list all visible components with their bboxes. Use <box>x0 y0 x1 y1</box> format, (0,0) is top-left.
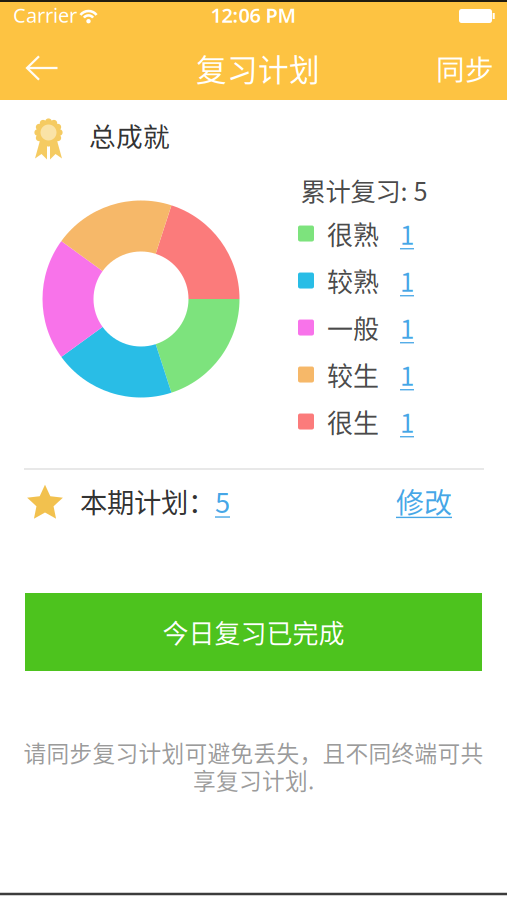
button[interactable]: 1 <box>400 356 414 393</box>
staticText: 一般 <box>327 309 379 346</box>
button[interactable]: 今日复习已完成 <box>25 593 482 671</box>
button[interactable]: 5 <box>215 481 230 521</box>
staticText: 1 <box>400 215 414 252</box>
staticText: 较生 <box>327 356 379 393</box>
staticText: 很熟 <box>327 215 379 252</box>
staticText: 本期计划： <box>80 481 215 521</box>
staticText: 1 <box>400 356 414 393</box>
button[interactable]: 同步 <box>428 41 502 95</box>
staticText: 1 <box>400 403 414 440</box>
staticText: 1 <box>400 262 414 299</box>
staticText: 5 <box>215 481 230 521</box>
staticText: Carrier <box>13 2 77 28</box>
staticText: 请同步复习计划可避免丢失，且不同终端可共 <box>23 736 483 768</box>
button[interactable]: 1 <box>400 309 414 346</box>
button[interactable]: 修改 <box>390 475 458 527</box>
staticText: 1 <box>400 309 414 346</box>
staticText: 很生 <box>327 403 379 440</box>
staticText: 复习计划 <box>196 46 320 90</box>
staticText: 享复习计划. <box>193 763 314 796</box>
button[interactable]: Back <box>15 47 68 88</box>
button[interactable]: 1 <box>400 262 414 299</box>
staticText: 同步 <box>436 47 494 89</box>
staticText: 今日复习已完成 <box>162 613 344 651</box>
staticText: 总成就 <box>89 116 170 154</box>
button[interactable]: 1 <box>400 215 414 252</box>
staticText: 较熟 <box>327 262 379 299</box>
staticText: 12:06 PM <box>210 2 296 28</box>
staticText: 修改 <box>396 481 452 521</box>
button[interactable]: 1 <box>400 403 414 440</box>
staticText: 累计复习: 5 <box>300 172 427 208</box>
